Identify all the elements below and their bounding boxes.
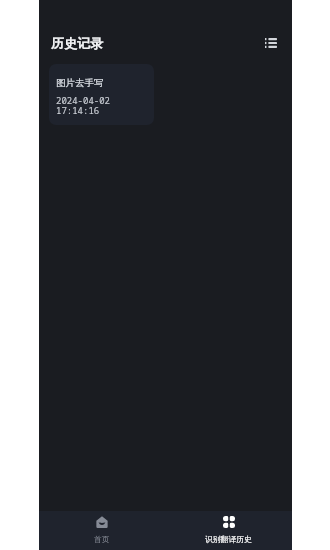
button[interactable]: 首页: [39, 511, 165, 550]
staticText: 首页: [94, 534, 110, 544]
staticText: 2024-04-02 17:14:16: [56, 94, 111, 117]
staticText: 图片去手写: [56, 77, 104, 89]
staticText: 历史记录: [51, 35, 103, 51]
button[interactable]: 图片去手写: [49, 64, 154, 125]
staticText: 识别翻译历史: [205, 534, 252, 544]
button[interactable]: 识别翻译历史: [165, 511, 292, 550]
button[interactable]: List options: [258, 30, 284, 56]
